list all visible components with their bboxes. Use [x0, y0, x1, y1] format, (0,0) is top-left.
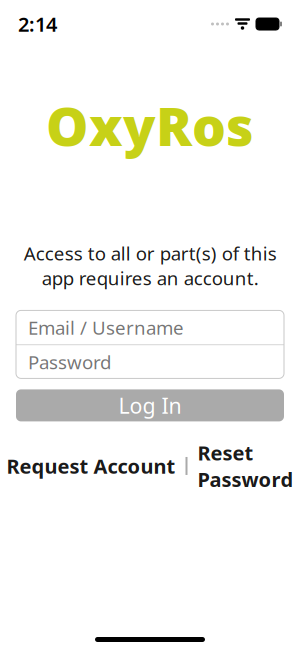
staticText: Email / Username [28, 315, 184, 340]
staticText: Log In [118, 391, 181, 419]
button[interactable]: Email / Username [16, 310, 284, 344]
staticText: 2:14 [18, 11, 57, 37]
staticText: Request Account [6, 453, 175, 479]
staticText: Password [28, 349, 111, 374]
staticText: Access to all or part(s) of this app req… [23, 241, 276, 290]
button[interactable]: Log In [16, 389, 284, 421]
staticText: Reset Password [197, 439, 293, 492]
staticText: OxyRos [46, 90, 254, 161]
button[interactable]: Reset Password [197, 439, 293, 492]
button[interactable]: Password [16, 345, 284, 378]
button[interactable]: Request Account [6, 453, 175, 479]
